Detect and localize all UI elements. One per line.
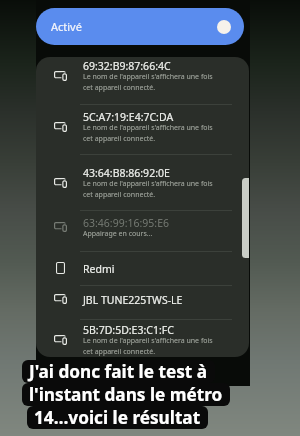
- staticText: 43:64:B8:86:92:0E: [83, 166, 170, 180]
- staticText: Le nom de l'appareil s'affichera une foi…: [83, 123, 220, 143]
- button[interactable]: 5C:A7:19:E4:7C:DA: [36, 104, 249, 154]
- staticText: 14…voici le résultat: [34, 406, 201, 429]
- staticText: Le nom de l'appareil s'affichera une foi…: [83, 179, 220, 199]
- staticText: Redmi: [83, 262, 115, 276]
- staticText: JBL TUNE225TWS-LE: [83, 293, 183, 307]
- staticText: 5C:A7:19:E4:7C:DA: [83, 110, 174, 124]
- staticText: 63:46:99:16:95:E6: [83, 216, 169, 230]
- staticText: Le nom de l'appareil s'affichera une foi…: [83, 72, 220, 92]
- staticText: J'ai donc fait le test à: [29, 360, 208, 383]
- staticText: Appairage en cours...: [83, 229, 153, 239]
- staticText: l'instant dans le métro: [29, 383, 223, 406]
- staticText: Le nom de l'appareil s'affichera une foi…: [83, 336, 220, 356]
- button[interactable]: 69:32:B9:87:66:4C: [36, 57, 249, 104]
- button[interactable]: Activé: [36, 8, 244, 45]
- button[interactable]: 43:64:B8:86:92:0E: [36, 154, 249, 210]
- staticText: 5B:7D:5D:E3:C1:FC: [83, 323, 174, 337]
- staticText: 69:32:B9:87:66:4C: [83, 59, 171, 73]
- button[interactable]: 5B:7D:5D:E3:C1:FC: [36, 319, 249, 357]
- button[interactable]: Redmi: [36, 251, 249, 285]
- button[interactable]: JBL TUNE225TWS-LE: [36, 285, 249, 319]
- button[interactable]: 63:46:99:16:95:E6: [36, 210, 249, 251]
- staticText: Activé: [51, 19, 82, 34]
